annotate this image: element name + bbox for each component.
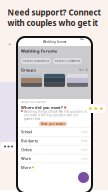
button[interactable]: Bar/party <box>18 136 91 145</box>
staticText: Wedding forums <box>21 48 57 54</box>
staticText: Recent Discussions <box>23 59 49 63</box>
button[interactable]: Recent Discussions <box>21 58 51 64</box>
button[interactable]: More <box>18 163 91 172</box>
staticText: ✦ <box>8 42 11 46</box>
staticText: ★ <box>99 105 104 112</box>
staticText: Need support? Connect with couples who g… <box>7 7 100 28</box>
button[interactable]: Share your answer <box>39 122 67 126</box>
button[interactable]: Work <box>18 154 91 163</box>
button[interactable]: Compose <box>78 172 89 183</box>
staticText: Recent Comments <box>55 59 80 63</box>
button[interactable]: Online <box>18 145 91 154</box>
staticText: See all <box>79 68 88 72</box>
button[interactable] <box>44 74 65 87</box>
staticText: LATEST DISCUSSIONS <box>21 100 45 104</box>
staticText: School <box>21 129 32 134</box>
staticText: Wedding things official! We first questi… <box>24 110 87 121</box>
staticText: Wedding forums <box>43 40 66 44</box>
staticText: Vote <box>81 157 88 160</box>
staticText: More <box>21 165 31 170</box>
staticText: Work <box>21 156 31 161</box>
button[interactable]: See all <box>79 68 88 72</box>
staticText: Bar/party <box>21 138 38 143</box>
button[interactable] <box>67 74 88 87</box>
staticText: ★ <box>88 105 93 112</box>
staticText: Vote <box>81 148 88 151</box>
button[interactable]: Recent Comments <box>53 58 82 64</box>
staticText: Online <box>21 147 32 152</box>
staticText: Vote <box>81 139 88 142</box>
staticText: Groups <box>21 67 36 72</box>
button[interactable] <box>21 74 42 87</box>
staticText: Vote <box>81 130 88 133</box>
staticText: ★ <box>93 105 98 112</box>
staticText: Where did you meet? <box>21 105 63 110</box>
staticText: Share your answer <box>41 122 65 126</box>
button[interactable]: School <box>18 127 91 136</box>
